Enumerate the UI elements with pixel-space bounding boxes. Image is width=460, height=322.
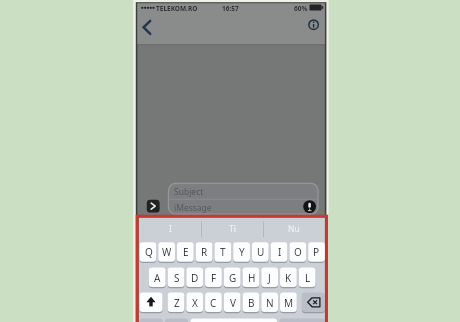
button[interactable]: K <box>280 268 297 288</box>
button[interactable]: X <box>186 293 203 313</box>
button[interactable]: R <box>196 242 213 262</box>
button[interactable]: H <box>243 268 260 288</box>
button[interactable]: Nu <box>263 218 325 239</box>
staticText: F <box>211 271 217 285</box>
staticText: D <box>191 271 199 285</box>
staticText: K <box>285 271 292 285</box>
staticText: S <box>174 271 180 285</box>
button[interactable]: Q <box>140 242 157 262</box>
staticText: V <box>230 296 236 310</box>
button[interactable]: P <box>308 242 325 262</box>
staticText: B <box>248 296 255 310</box>
staticText: P <box>313 245 320 259</box>
button[interactable]: E <box>177 242 194 262</box>
staticText: R <box>201 245 208 259</box>
staticText: TELEKOM.RO <box>156 4 198 13</box>
staticText: H <box>248 271 256 285</box>
button[interactable]: I <box>271 242 288 262</box>
staticText: I <box>169 223 172 235</box>
button[interactable]: Ti <box>201 218 263 239</box>
button[interactable]: S <box>168 268 185 288</box>
staticText: Z <box>174 296 180 310</box>
staticText: L <box>305 271 311 285</box>
button[interactable]: W <box>158 242 175 262</box>
button[interactable]: T <box>214 242 231 262</box>
button[interactable] <box>140 16 154 36</box>
staticText: Nu <box>288 223 300 235</box>
staticText: N <box>266 296 274 310</box>
staticText: O <box>294 245 302 259</box>
staticText: Q <box>145 245 153 259</box>
button[interactable]: A <box>149 268 166 288</box>
button[interactable]: U <box>252 242 269 262</box>
staticText: I <box>278 245 282 259</box>
button[interactable]: O <box>289 242 306 262</box>
button[interactable] <box>307 17 322 32</box>
staticText: W <box>162 245 172 259</box>
staticText: Ti <box>229 223 236 235</box>
button[interactable]: B <box>243 293 260 313</box>
staticText: X <box>192 296 198 310</box>
button[interactable]: J <box>261 268 278 288</box>
button[interactable]: Y <box>233 242 250 262</box>
staticText: G <box>229 271 237 285</box>
staticText: T <box>220 245 226 259</box>
button[interactable] <box>302 293 325 313</box>
button[interactable]: L <box>299 268 316 288</box>
staticText: E <box>183 245 189 259</box>
staticText: 60% <box>294 4 308 13</box>
staticText: M <box>284 296 294 310</box>
button[interactable] <box>147 200 160 213</box>
button[interactable] <box>303 200 318 215</box>
button[interactable]: G <box>224 268 241 288</box>
button[interactable]: N <box>261 293 278 313</box>
staticText: J <box>268 271 271 285</box>
staticText: A <box>154 271 161 285</box>
button[interactable]: F <box>205 268 222 288</box>
staticText: 16:57 <box>222 4 239 13</box>
button[interactable]: D <box>186 268 203 288</box>
staticText: U <box>257 245 265 259</box>
button[interactable]: C <box>205 293 222 313</box>
button[interactable]: M <box>280 293 297 313</box>
button[interactable] <box>169 183 319 214</box>
staticText: Subject <box>174 186 204 198</box>
staticText: C <box>210 296 217 310</box>
button[interactable] <box>191 319 278 322</box>
button[interactable]: Z <box>168 293 185 313</box>
button[interactable] <box>140 293 163 313</box>
staticText: Y <box>239 245 245 259</box>
button[interactable]: V <box>224 293 241 313</box>
staticText: iMessage <box>174 202 212 214</box>
